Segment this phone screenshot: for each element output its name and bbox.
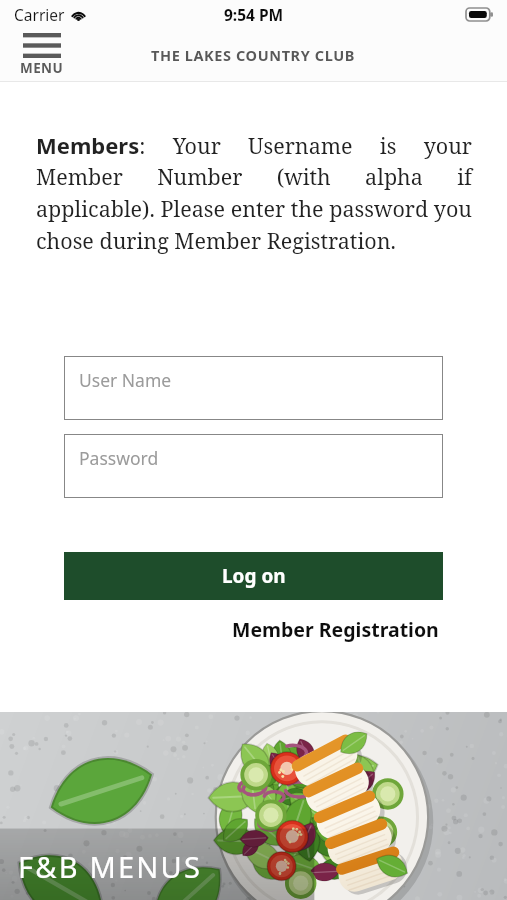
button[interactable]: Log on [64, 552, 443, 600]
staticText: Members: Your Username is your Member Nu… [36, 130, 472, 255]
button[interactable]: Password [64, 434, 443, 498]
staticText: F&B MENUS [18, 847, 203, 886]
staticText: 9:54 PM [224, 4, 284, 25]
staticText: Member Registration [232, 616, 439, 643]
staticText: Carrier [14, 4, 65, 25]
staticText: Password [79, 446, 159, 470]
button[interactable]: User Name [64, 356, 443, 420]
staticText: MENU [20, 59, 64, 77]
button[interactable]: F&B MENUS [0, 712, 507, 900]
staticText: THE LAKES COUNTRY CLUB [151, 45, 356, 65]
button[interactable]: Member Registration [228, 612, 443, 647]
staticText: User Name [79, 368, 172, 392]
button[interactable]: Menu [18, 31, 66, 79]
staticText: Log on [222, 563, 286, 589]
